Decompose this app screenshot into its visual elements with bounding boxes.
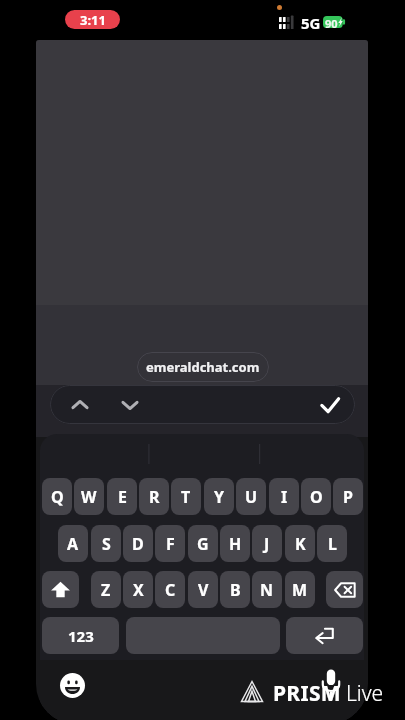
staticText: H [229, 533, 242, 555]
button[interactable]: X [123, 571, 153, 608]
button[interactable]: N [252, 571, 282, 608]
button[interactable]: A [58, 525, 88, 562]
button[interactable]: S [91, 525, 121, 562]
staticText: J [264, 533, 270, 555]
staticText: W [81, 486, 97, 508]
staticText: I [281, 486, 288, 508]
button[interactable]: V [188, 571, 218, 608]
staticText: C [165, 579, 176, 601]
button[interactable]: Backspace [326, 571, 363, 608]
button[interactable]: P [333, 478, 363, 515]
button[interactable]: C [155, 571, 185, 608]
staticText: emeraldchat.com [146, 358, 260, 376]
button[interactable]: J [252, 525, 282, 562]
button[interactable]: R [139, 478, 169, 515]
button[interactable]: G [188, 525, 218, 562]
button[interactable]: 123 [42, 617, 119, 654]
button[interactable]: Q [42, 478, 72, 515]
button[interactable]: L [317, 525, 347, 562]
button[interactable]: U [236, 478, 266, 515]
staticText: M [292, 579, 308, 601]
button[interactable]: Y [204, 478, 234, 515]
staticText: 123 [68, 626, 94, 646]
staticText: E [118, 486, 127, 508]
staticText: D [132, 533, 144, 555]
staticText: Y [214, 486, 225, 508]
button[interactable]: 3:11 [65, 10, 120, 29]
staticText: T [181, 486, 191, 508]
button[interactable]: Enter [286, 617, 363, 654]
staticText: 3:11 [80, 11, 106, 29]
staticText: R [149, 486, 160, 508]
staticText: L [328, 533, 337, 555]
staticText: G [197, 533, 209, 555]
button[interactable]: F [155, 525, 185, 562]
staticText: S [102, 533, 111, 555]
staticText: PRISM [273, 679, 341, 708]
staticText: Q [51, 486, 64, 508]
staticText: 5G [301, 13, 321, 33]
staticText: P [343, 486, 353, 508]
button[interactable]: W [74, 478, 104, 515]
staticText: X [133, 579, 144, 601]
button[interactable]: E [107, 478, 137, 515]
staticText: V [198, 579, 209, 601]
staticText: F [166, 533, 175, 555]
button[interactable]: Space [126, 617, 280, 654]
staticText: Z [101, 579, 111, 601]
button[interactable]: Emoji [54, 667, 91, 704]
button[interactable]: emeraldchat.com [137, 352, 269, 382]
button[interactable]: K [285, 525, 315, 562]
button[interactable]: Done [308, 385, 352, 424]
button[interactable]: Z [91, 571, 121, 608]
staticText: B [230, 579, 241, 601]
staticText: 90 [325, 16, 338, 28]
staticText: Live [346, 679, 384, 708]
button[interactable]: M [285, 571, 315, 608]
button[interactable]: H [220, 525, 250, 562]
button[interactable]: Previous field [58, 385, 102, 424]
button[interactable]: B [220, 571, 250, 608]
button[interactable]: O [301, 478, 331, 515]
button[interactable]: I [269, 478, 299, 515]
button[interactable]: D [123, 525, 153, 562]
staticText: U [245, 486, 258, 508]
button[interactable]: Next field [108, 385, 152, 424]
staticText: O [310, 486, 323, 508]
staticText: N [260, 579, 274, 601]
button[interactable]: T [171, 478, 201, 515]
staticText: K [295, 533, 306, 555]
staticText: A [67, 533, 79, 555]
button[interactable]: Shift [42, 571, 79, 608]
